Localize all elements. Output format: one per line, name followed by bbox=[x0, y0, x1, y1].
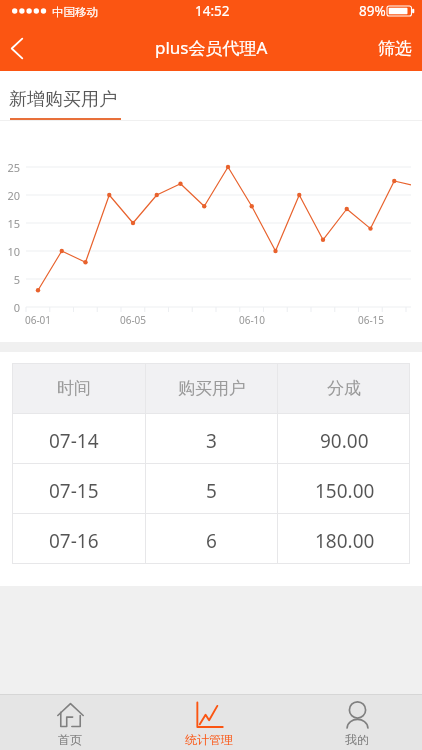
staticText: 06-05 bbox=[111, 313, 155, 327]
staticText: 中国移动 bbox=[52, 5, 98, 19]
staticText: 我的 bbox=[345, 732, 369, 747]
staticText: 时间 bbox=[57, 378, 91, 399]
button[interactable]: 我的 bbox=[322, 695, 392, 750]
staticText: 新增购买用户 bbox=[9, 88, 117, 111]
staticText: 首页 bbox=[58, 732, 82, 747]
staticText: 25 bbox=[0, 160, 20, 175]
staticText: 06-15 bbox=[349, 313, 393, 327]
staticText: 90.00 bbox=[320, 428, 369, 454]
button[interactable]: 07-14 bbox=[12, 414, 410, 463]
button[interactable]: 筛选 bbox=[377, 22, 411, 71]
staticText: 5 bbox=[0, 272, 20, 287]
staticText: 150.00 bbox=[315, 478, 375, 504]
staticText: 07-14 bbox=[49, 428, 99, 454]
button[interactable]: 07-16 bbox=[12, 514, 410, 563]
staticText: 0 bbox=[0, 300, 20, 315]
button[interactable]: 07-15 bbox=[12, 464, 410, 513]
staticText: 6 bbox=[206, 528, 217, 554]
button[interactable] bbox=[10, 71, 121, 122]
staticText: 06-01 bbox=[16, 313, 60, 327]
staticText: 20 bbox=[0, 188, 20, 203]
staticText: 14:52 bbox=[195, 2, 230, 20]
staticText: 分成 bbox=[327, 378, 361, 399]
button[interactable]: 首页 bbox=[35, 695, 105, 750]
staticText: 15 bbox=[0, 216, 20, 231]
staticText: 89% bbox=[359, 2, 386, 20]
staticText: 统计管理 bbox=[185, 732, 233, 747]
staticText: 筛选 bbox=[378, 38, 412, 59]
button[interactable]: 统计管理 bbox=[174, 695, 244, 750]
staticText: 3 bbox=[206, 428, 217, 454]
staticText: plus会员代理A bbox=[155, 36, 268, 59]
staticText: 06-10 bbox=[230, 313, 274, 327]
staticText: 07-16 bbox=[49, 528, 99, 554]
button[interactable]: Back bbox=[0, 22, 48, 71]
staticText: 10 bbox=[0, 244, 20, 259]
staticText: 5 bbox=[206, 478, 217, 504]
staticText: 07-15 bbox=[49, 478, 99, 504]
staticText: 购买用户 bbox=[178, 378, 246, 399]
staticText: 180.00 bbox=[315, 528, 375, 554]
